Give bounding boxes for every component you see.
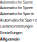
staticText: Automatische Sperre [0, 11, 34, 16]
staticText: Automatische Sperre [0, 17, 37, 23]
staticText: Ländereinstellungen [0, 24, 33, 29]
staticText: Einstellungen [0, 30, 22, 35]
staticText: Automatische Sperre [0, 0, 33, 4]
staticText: Allgemein [0, 36, 20, 41]
staticText: Automatische Sperre [0, 5, 33, 10]
